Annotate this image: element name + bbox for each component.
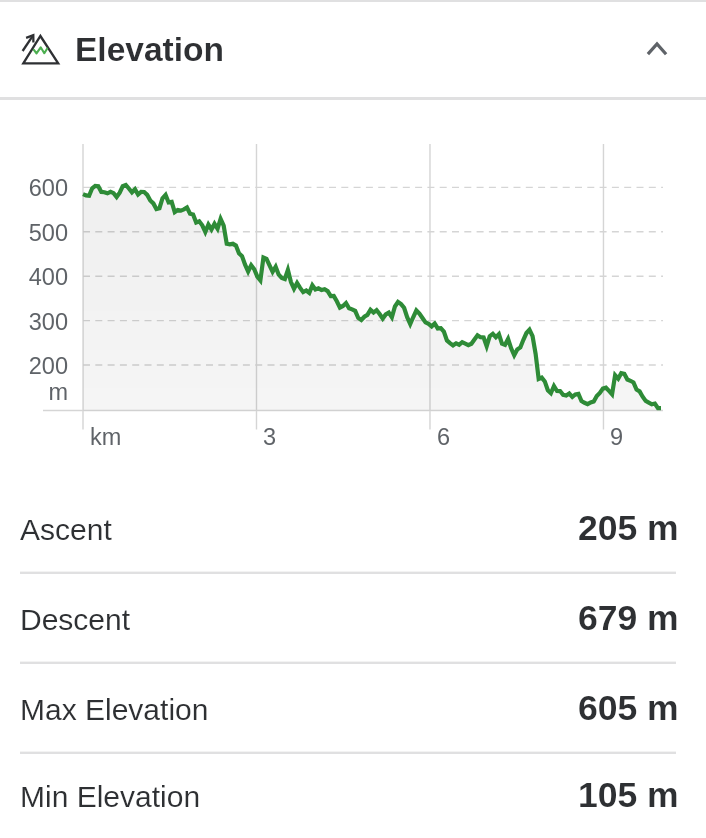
staticText: 300 <box>0 309 68 335</box>
staticText: 679 m <box>578 598 679 638</box>
staticText: 3 <box>263 424 277 450</box>
staticText: 500 <box>0 220 68 246</box>
staticText: Ascent <box>20 513 112 547</box>
button[interactable]: Min Elevation <box>0 754 706 838</box>
staticText: Descent <box>20 603 131 637</box>
button[interactable]: Ascent <box>0 484 706 574</box>
staticText: 105 m <box>578 775 679 815</box>
button[interactable]: Descent <box>0 574 706 664</box>
staticText: 605 m <box>578 688 679 728</box>
staticText: Max Elevation <box>20 693 209 727</box>
staticText: 400 <box>0 264 68 290</box>
staticText: m <box>0 379 68 405</box>
button[interactable]: Collapse section <box>629 21 685 77</box>
button[interactable]: Elevation <box>0 0 706 100</box>
staticText: 9 <box>610 424 624 450</box>
staticText: Elevation <box>75 31 224 68</box>
staticText: 6 <box>437 424 451 450</box>
staticText: 205 m <box>578 508 679 548</box>
staticText: 200 <box>0 353 68 379</box>
staticText: km <box>90 424 122 450</box>
staticText: 600 <box>0 175 68 201</box>
staticText: Min Elevation <box>20 780 201 814</box>
button[interactable]: Max Elevation <box>0 664 706 754</box>
